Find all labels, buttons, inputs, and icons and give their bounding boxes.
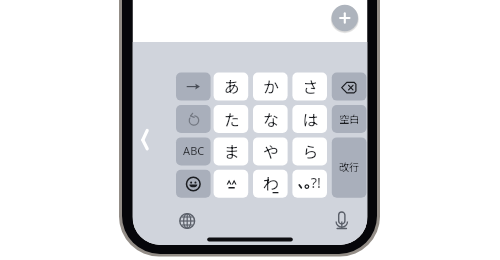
button[interactable]: あ bbox=[214, 73, 249, 101]
button[interactable]: Emoji bbox=[176, 170, 211, 198]
button[interactable]: 、。?! bbox=[292, 170, 327, 198]
button[interactable]: Next candidate bbox=[176, 73, 211, 101]
button[interactable]: 顔文字 bbox=[214, 170, 249, 198]
button[interactable]: は bbox=[292, 105, 327, 133]
button[interactable]: Dictation bbox=[329, 207, 354, 232]
button[interactable]: Undo bbox=[176, 105, 211, 133]
button[interactable]: わ bbox=[253, 170, 288, 198]
button[interactable]: 改行 bbox=[332, 137, 367, 197]
button[interactable]: ABC bbox=[176, 137, 211, 165]
button[interactable]: か bbox=[253, 73, 288, 101]
button[interactable]: New message bbox=[332, 5, 358, 31]
button[interactable]: な bbox=[253, 105, 288, 133]
button[interactable]: た bbox=[214, 105, 249, 133]
button[interactable]: Hide keyboard bbox=[136, 122, 158, 158]
button[interactable]: 空白 bbox=[332, 105, 367, 133]
button[interactable]: さ bbox=[292, 73, 327, 101]
button[interactable]: Delete bbox=[332, 73, 367, 101]
button[interactable]: や bbox=[253, 137, 288, 165]
button[interactable]: Switch keyboard language bbox=[175, 209, 200, 234]
button[interactable]: ま bbox=[214, 137, 249, 165]
button[interactable]: ら bbox=[292, 137, 327, 165]
